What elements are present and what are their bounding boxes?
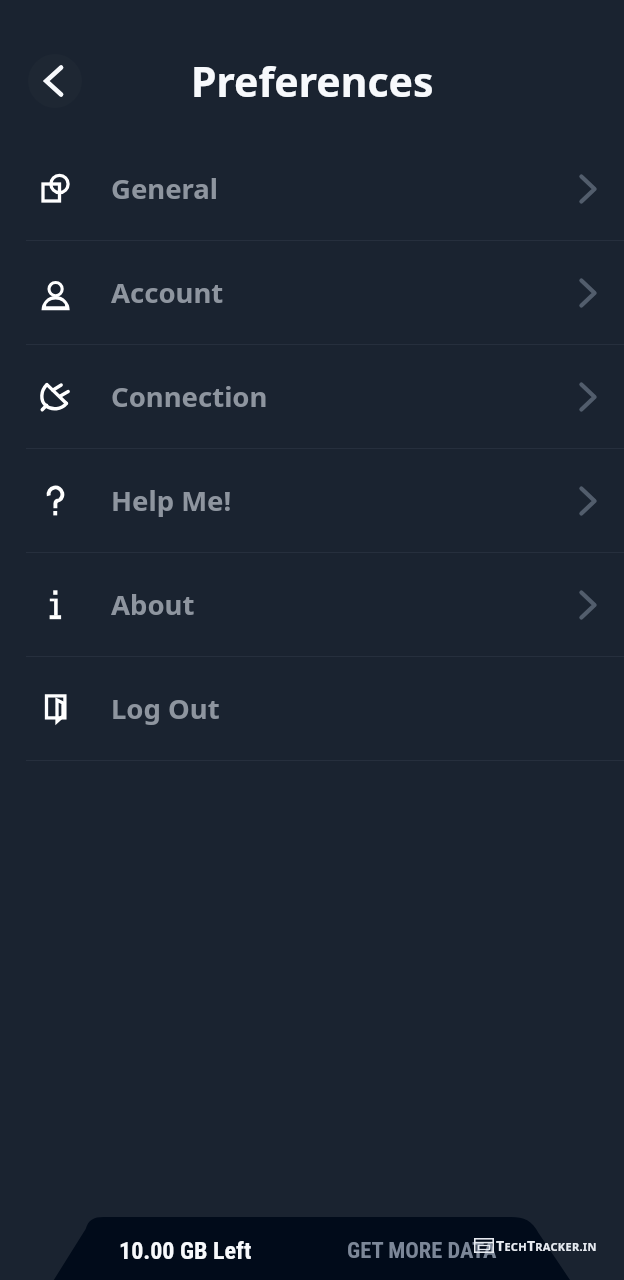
button[interactable]: Account [0, 241, 624, 344]
staticText: Connection [111, 378, 268, 415]
staticText: Log Out [111, 690, 220, 727]
button[interactable]: Help Me! [0, 449, 624, 552]
staticText: Account [111, 274, 224, 311]
staticText: Preferences [191, 53, 434, 109]
button[interactable]: Log Out [0, 657, 624, 760]
button[interactable]: GET MORE DATA [347, 1237, 497, 1263]
staticText: GET MORE DATA [347, 1237, 497, 1263]
staticText: General [111, 170, 219, 207]
button[interactable]: Back [28, 54, 82, 108]
staticText: About [111, 586, 195, 623]
button[interactable]: Connection [0, 345, 624, 448]
staticText: TECHTRACKER.IN [496, 1236, 597, 1255]
button[interactable]: General [0, 137, 624, 240]
button[interactable]: 10.00 GB Left [119, 1237, 252, 1265]
staticText: Help Me! [111, 482, 232, 519]
button[interactable]: About [0, 553, 624, 656]
staticText: 10.00 GB Left [119, 1237, 252, 1265]
